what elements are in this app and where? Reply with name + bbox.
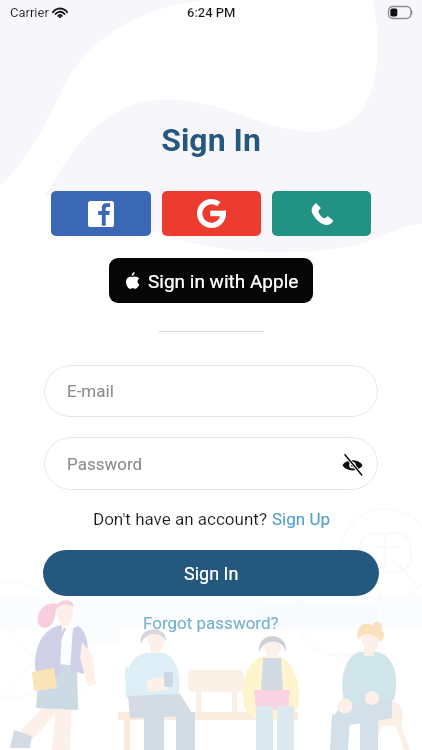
staticText: Don't have an account? xyxy=(93,509,272,529)
staticText: Sign In xyxy=(0,121,422,159)
button[interactable]: Sign in with Facebook xyxy=(51,191,151,236)
staticText: Carrier xyxy=(10,5,49,20)
button[interactable]: Password xyxy=(44,437,378,490)
button[interactable]: Show password xyxy=(335,447,369,481)
staticText: Sign In xyxy=(184,563,239,584)
button[interactable]: Sign in with phone xyxy=(272,191,371,236)
button[interactable]: E-mail xyxy=(44,365,378,417)
staticText: E-mail xyxy=(67,381,114,401)
button[interactable]: Sign Up xyxy=(272,509,330,529)
staticText: Sign in with Apple xyxy=(148,270,299,292)
staticText: Sign Up xyxy=(272,509,330,529)
staticText: Password xyxy=(67,454,143,474)
staticText: 6:24 PM xyxy=(187,5,236,20)
button[interactable]: Sign in with Google xyxy=(162,191,261,236)
button[interactable]: Sign in with Apple xyxy=(109,258,313,303)
button[interactable]: Forgot password? xyxy=(143,613,279,633)
staticText: Forgot password? xyxy=(143,613,279,633)
button[interactable]: Sign In xyxy=(43,550,379,596)
